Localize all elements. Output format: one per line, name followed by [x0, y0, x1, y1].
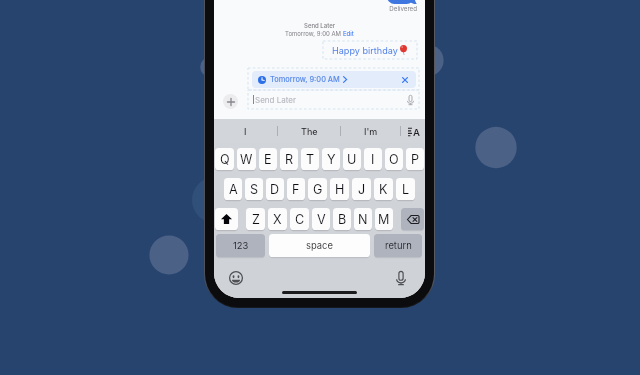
staticText: The	[301, 126, 318, 137]
staticText: G	[313, 182, 323, 197]
button[interactable]: R	[280, 148, 298, 170]
staticText: I	[244, 126, 247, 137]
staticText: Send Later	[214, 22, 425, 29]
button[interactable]: Backspace	[401, 208, 424, 230]
button[interactable]: I	[364, 148, 382, 170]
staticText: Y	[327, 152, 336, 167]
button[interactable]: O	[385, 148, 403, 170]
button[interactable]: Z	[246, 208, 265, 230]
button[interactable]: space	[269, 234, 370, 257]
button[interactable]: C	[290, 208, 309, 230]
staticText: Send Later	[255, 95, 296, 105]
staticText: I	[371, 152, 375, 167]
button[interactable]: J	[352, 178, 371, 200]
staticText: K	[379, 182, 388, 197]
button[interactable]: S	[245, 178, 263, 200]
button[interactable]: Edit	[343, 30, 354, 37]
button[interactable]: Text formatting	[401, 121, 425, 141]
staticText: C	[295, 212, 305, 227]
button[interactable]: Y	[322, 148, 340, 170]
staticText: M	[378, 212, 390, 227]
button[interactable]: K	[374, 178, 393, 200]
staticText: P	[411, 152, 420, 167]
staticText: D	[270, 182, 280, 197]
button[interactable]: M	[375, 208, 393, 230]
staticText: L	[402, 182, 410, 197]
staticText: O	[389, 152, 399, 167]
button[interactable]: B	[333, 208, 351, 230]
staticText: R	[285, 152, 294, 167]
button[interactable]: T	[301, 148, 319, 170]
staticText: return	[385, 240, 412, 251]
button[interactable]: G	[308, 178, 327, 200]
staticText: A	[413, 127, 420, 136]
button[interactable]: 123	[216, 234, 265, 257]
staticText: Tomorrow, 9:00 AM	[285, 30, 343, 37]
button[interactable]: V	[312, 208, 330, 230]
button[interactable]: The	[278, 121, 340, 141]
staticText: N	[358, 212, 368, 227]
button[interactable]: Emoji	[229, 271, 243, 285]
staticText: V	[317, 212, 326, 227]
button[interactable]: A	[224, 178, 242, 200]
staticText: Edit	[343, 30, 354, 37]
button[interactable]: H	[330, 178, 349, 200]
button[interactable]: Tomorrow, 9:00 AM	[252, 71, 416, 88]
button[interactable]: U	[343, 148, 361, 170]
button[interactable]: return	[374, 234, 422, 257]
button[interactable]: Shift	[215, 208, 238, 230]
staticText: S	[250, 182, 259, 197]
button[interactable]: Add attachment	[223, 94, 238, 109]
staticText: Tomorrow, 9:00 AM	[270, 75, 340, 84]
staticText: Happy birthday	[332, 45, 398, 56]
staticText: Delivered	[347, 5, 417, 13]
staticText: U	[347, 152, 357, 167]
staticText: H	[335, 182, 345, 197]
staticText: J	[358, 182, 366, 197]
button[interactable]: L	[396, 178, 415, 200]
button[interactable]: Remove scheduled send	[399, 74, 410, 85]
staticText: F	[292, 182, 300, 197]
staticText: I'm	[364, 126, 378, 137]
button[interactable]: W	[237, 148, 256, 170]
button[interactable]: E	[259, 148, 277, 170]
button[interactable]: I	[214, 121, 277, 141]
staticText: T	[306, 152, 315, 167]
staticText: X	[273, 212, 282, 227]
staticText: E	[264, 152, 272, 167]
button[interactable]: X	[268, 208, 287, 230]
staticText: A	[229, 182, 238, 197]
button[interactable]: N	[354, 208, 372, 230]
staticText: 123	[233, 240, 249, 251]
staticText: W	[240, 152, 253, 167]
button[interactable]: P	[406, 148, 424, 170]
staticText: B	[338, 212, 347, 227]
button[interactable]: D	[266, 178, 284, 200]
button[interactable]: F	[287, 178, 305, 200]
staticText: space	[306, 240, 333, 251]
button[interactable]: I'm	[341, 121, 400, 141]
button[interactable]: Q	[215, 148, 234, 170]
staticText: Q	[220, 152, 230, 167]
button[interactable]: Dictation	[394, 271, 408, 285]
staticText: Z	[252, 212, 260, 227]
